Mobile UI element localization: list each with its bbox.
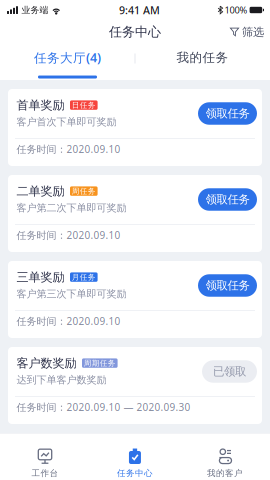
staticText: 客户数奖励 xyxy=(16,355,76,371)
staticText: 我的客户 xyxy=(207,468,243,479)
staticText: 我的任务 xyxy=(176,50,228,65)
staticText: 客户首次下单即可奖励 xyxy=(16,116,116,128)
staticText: 日任务 xyxy=(72,100,96,110)
staticText: 任务时间：2020.09.10 xyxy=(16,228,120,242)
button[interactable]: 我的客户 xyxy=(180,433,270,480)
staticText: 月任务 xyxy=(72,272,96,282)
button[interactable]: 任务大厅(4) xyxy=(0,44,135,80)
staticText: 二单奖励 xyxy=(16,183,64,199)
staticText: 领取任务 xyxy=(205,106,249,121)
staticText: 客户第三次下单即可奖励 xyxy=(16,288,126,300)
staticText: 已领取 xyxy=(213,364,246,379)
staticText: 工作台 xyxy=(31,468,58,479)
staticText: 业务端 xyxy=(21,4,48,16)
staticText: 任务中心 xyxy=(109,24,161,40)
button[interactable]: 领取任务 xyxy=(198,102,257,125)
staticText: 筛选 xyxy=(242,25,264,39)
staticText: 三单奖励 xyxy=(16,269,64,285)
button[interactable]: 任务中心 xyxy=(90,433,180,480)
button[interactable]: 已领取 xyxy=(202,360,257,383)
button[interactable]: 领取任务 xyxy=(198,188,257,211)
staticText: 周任务 xyxy=(72,186,96,196)
staticText: 领取任务 xyxy=(205,278,249,293)
button[interactable]: 筛选 xyxy=(220,20,270,44)
staticText: 任务大厅(4) xyxy=(34,49,101,66)
staticText: 任务时间：2020.09.10 xyxy=(16,314,120,328)
staticText: 100% xyxy=(225,4,248,16)
staticText: 9:41 AM xyxy=(119,3,160,17)
staticText: 首单奖励 xyxy=(16,97,64,113)
button[interactable]: 工作台 xyxy=(0,433,90,480)
button[interactable]: 我的任务 xyxy=(135,44,270,80)
staticText: 领取任务 xyxy=(205,192,249,207)
staticText: 任务中心 xyxy=(117,468,153,479)
staticText: 任务时间：2020.09.10 xyxy=(16,142,120,156)
staticText: 周期任务 xyxy=(84,358,116,368)
staticText: 客户第二次下单即可奖励 xyxy=(16,202,126,214)
button[interactable]: 领取任务 xyxy=(198,274,257,297)
staticText: 达到下单客户数奖励 xyxy=(16,374,106,386)
staticText: 任务时间：2020.09.10 — 2020.09.30 xyxy=(16,400,190,414)
